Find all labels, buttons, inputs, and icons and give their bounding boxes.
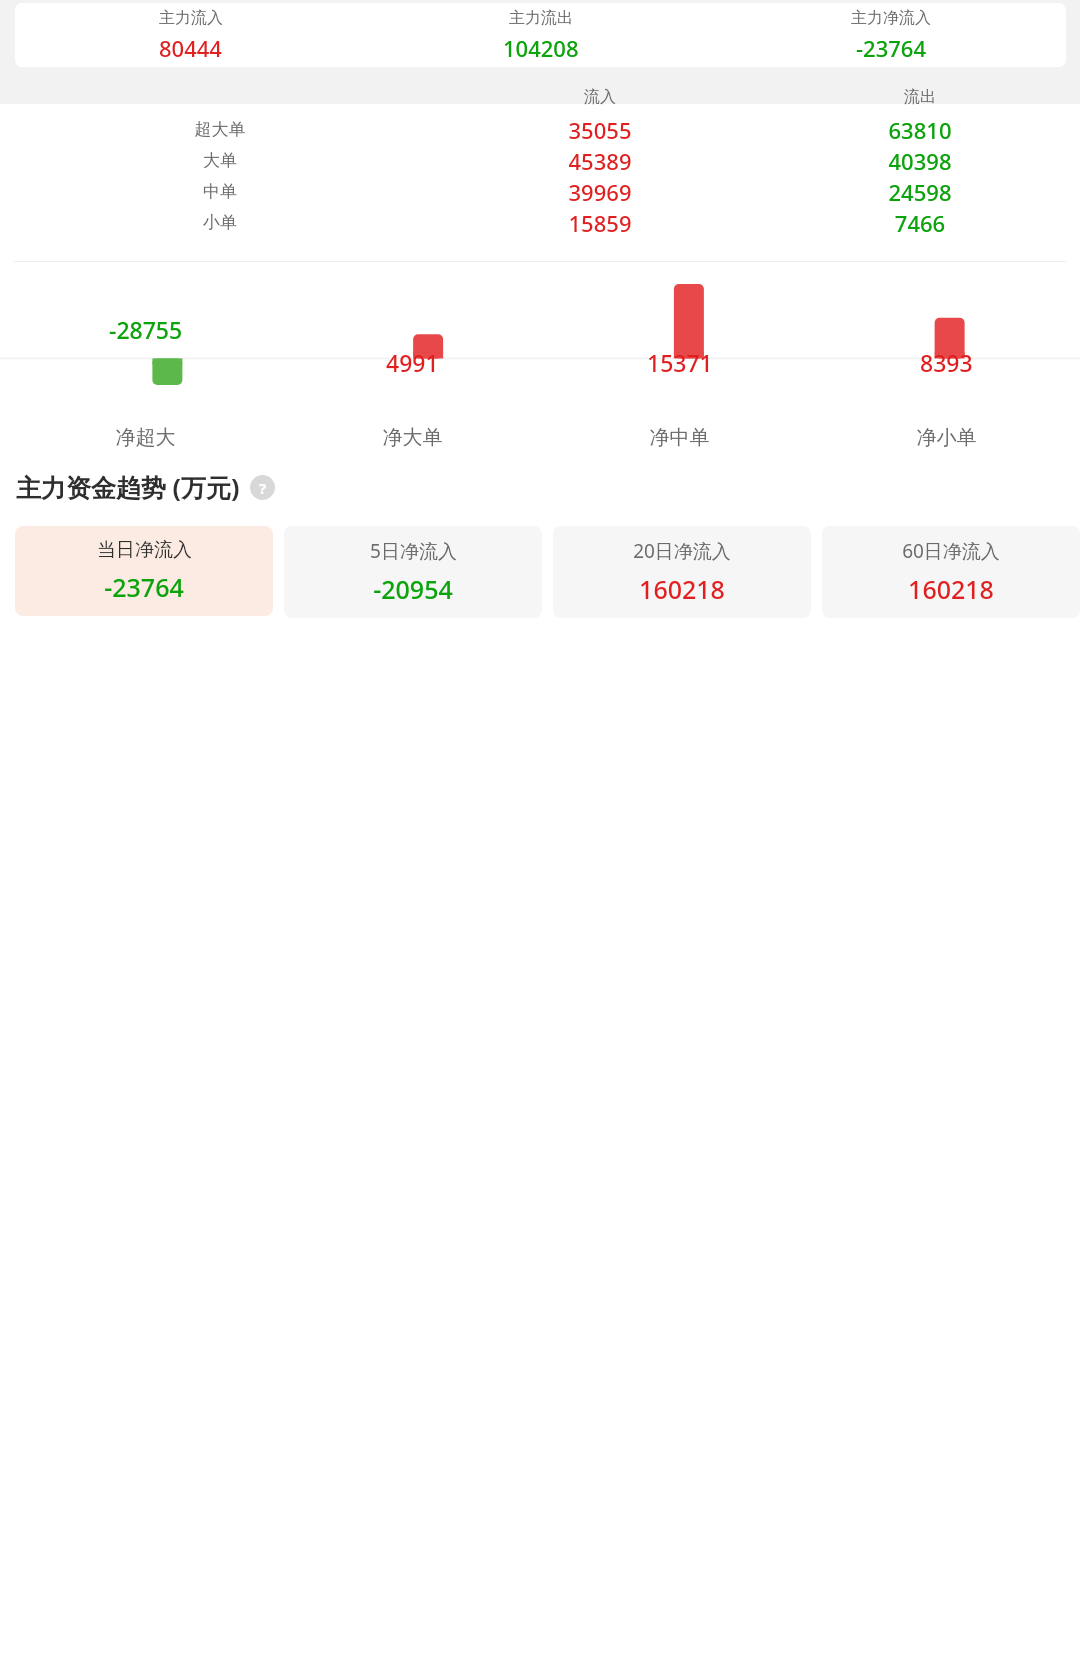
staticText: 4991 [386,347,439,378]
button[interactable]: 主力流入 [15,3,1066,67]
button[interactable]: 大单 [0,145,1080,176]
staticText: 净中单 [546,425,813,450]
staticText: 20日净流入 [633,538,731,564]
button[interactable]: 主力流入 [15,3,366,67]
staticText: 60日净流入 [902,538,1000,564]
staticText: 大单 [0,150,440,171]
button[interactable]: 主力流出 [366,3,716,67]
button[interactable]: 帮助说明 [250,475,275,500]
staticText: 8393 [920,347,973,378]
staticText: 80444 [159,33,222,63]
button[interactable]: 小单 [0,207,1080,238]
staticText: 24598 [760,177,1080,207]
button[interactable]: 中单 [0,176,1080,207]
button[interactable]: 当日净流入 [15,526,273,616]
staticText: 净大单 [279,425,546,450]
staticText: 小单 [0,212,440,233]
button[interactable]: 5日净流入 [284,526,542,618]
staticText: 7466 [760,208,1080,238]
staticText: 104208 [503,33,579,63]
button[interactable]: 超大单 [0,114,1080,145]
staticText: 5日净流入 [370,538,457,564]
staticText: 流出 [760,87,1080,107]
staticText: 160218 [639,572,725,606]
staticText: 40398 [760,146,1080,176]
button[interactable]: 20日净流入 [553,526,811,618]
staticText: 流入 [440,87,760,107]
staticText: 主力净流入 [851,8,931,28]
staticText: ? [259,478,267,498]
staticText: 15371 [647,347,713,378]
staticText: 净小单 [813,425,1080,450]
staticText: -28755 [109,314,183,345]
staticText: 45389 [440,146,760,176]
staticText: 63810 [760,115,1080,145]
staticText: 超大单 [0,119,440,140]
button[interactable]: 60日净流入 [822,526,1080,618]
staticText: -20954 [373,572,453,606]
staticText: 35055 [440,115,760,145]
staticText: 15859 [440,208,760,238]
staticText: 主力流入 [159,8,223,28]
staticText: 39969 [440,177,760,207]
staticText: 主力资金趋势 (万元) [16,470,240,504]
staticText: 中单 [0,181,440,202]
staticText: 主力流出 [509,8,573,28]
staticText: -23764 [104,570,184,604]
button[interactable]: 主力净流入 [716,3,1066,67]
staticText: -23764 [856,33,926,63]
staticText: 净超大 [12,425,279,450]
staticText: 当日净流入 [97,538,192,562]
staticText: 160218 [908,572,994,606]
